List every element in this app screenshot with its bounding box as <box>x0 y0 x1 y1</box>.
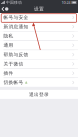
staticText: 退出登录 <box>29 91 49 97</box>
staticText: 隐私 <box>3 33 13 39</box>
staticText: 帐号与安全 <box>3 14 28 20</box>
staticText: 新消息通知 <box>3 24 28 30</box>
staticText: 设置 <box>34 6 44 12</box>
staticText: 切换帐号 <box>3 80 23 85</box>
button[interactable]: 隐私 <box>0 32 78 40</box>
button[interactable]: 退出登录 <box>0 90 78 99</box>
button[interactable]: 关于微信 <box>0 59 78 68</box>
button[interactable]: 插件 <box>0 69 78 78</box>
staticText: 中国移动 <box>6 0 22 5</box>
staticText: 插件 <box>3 70 13 76</box>
button[interactable]: Back <box>0 5 10 13</box>
staticText: 通用 <box>3 42 13 48</box>
staticText: 10:24 <box>62 0 71 5</box>
button[interactable]: 切换帐号 <box>0 78 78 87</box>
button[interactable]: 帐号与安全 <box>0 13 78 22</box>
staticText: 帮助与反馈 <box>3 52 28 58</box>
button[interactable]: 新消息通知 <box>0 22 78 31</box>
staticText: 关于微信 <box>3 61 23 67</box>
button[interactable]: 通用 <box>0 41 78 50</box>
button[interactable]: 帮助与反馈 <box>0 50 78 59</box>
